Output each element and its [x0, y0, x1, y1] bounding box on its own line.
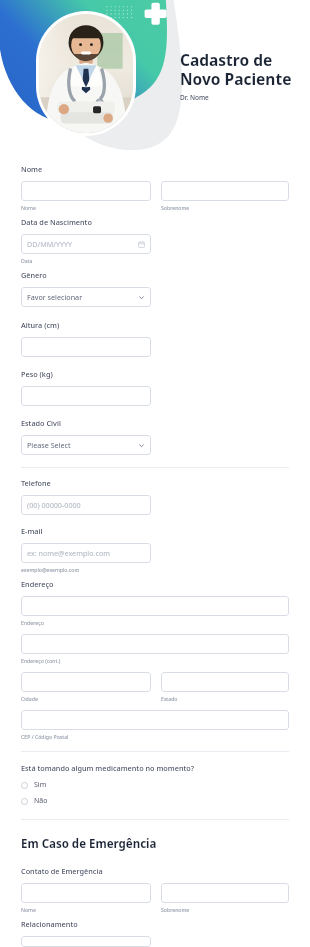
staticText: exemplo@exemplo.com [21, 566, 80, 573]
staticText: Não [34, 796, 48, 806]
staticText: Dr. Nome [180, 93, 209, 102]
button[interactable]: Não [21, 795, 289, 807]
button[interactable] [161, 883, 289, 903]
button[interactable] [161, 672, 289, 692]
button[interactable] [21, 634, 289, 654]
staticText: Endereço (cont.) [21, 657, 61, 664]
staticText: Endereço [21, 619, 44, 626]
button[interactable]: Please Select [21, 435, 151, 455]
staticText: Favor selecionar [27, 292, 83, 302]
staticText: Cadastro de Novo Paciente [180, 49, 302, 89]
button[interactable] [21, 710, 289, 730]
staticText: CEP / Código Postal [21, 733, 69, 740]
staticText: Sobrenome [161, 906, 190, 913]
staticText: Data de Nascimento [21, 217, 92, 227]
button[interactable]: (00) 00000-0000 [21, 495, 151, 515]
staticText: Cidade [21, 695, 38, 702]
other: Escolher data [138, 241, 145, 248]
button[interactable] [21, 596, 289, 616]
staticText: Relacionamento [21, 919, 78, 929]
staticText: Endereço [21, 579, 54, 589]
staticText: Contato de Emergência [21, 866, 103, 876]
staticText: Peso (kg) [21, 369, 53, 379]
staticText: Nome [21, 164, 43, 174]
button[interactable]: DD/MM/YYYY [21, 234, 151, 254]
staticText: Sobrenome [161, 204, 190, 211]
other: Abrir lista [138, 442, 145, 449]
staticText: DD/MM/YYYY [27, 239, 73, 249]
staticText: Telefone [21, 478, 51, 488]
other: Abrir lista [138, 294, 145, 301]
button[interactable]: Sim [21, 779, 289, 791]
button[interactable] [21, 883, 151, 903]
staticText: Estado [161, 695, 178, 702]
staticText: Em Caso de Emergência [21, 836, 157, 852]
button[interactable] [21, 181, 151, 201]
staticText: Nome [21, 204, 36, 211]
button[interactable] [21, 936, 151, 947]
button[interactable] [21, 337, 151, 357]
staticText: Please Select [27, 440, 71, 450]
staticText: ex: nome@exemplo.com [27, 548, 110, 558]
staticText: Altura (cm) [21, 320, 60, 330]
button[interactable] [21, 386, 151, 406]
button[interactable]: ex: nome@exemplo.com [21, 543, 151, 563]
button[interactable]: Favor selecionar [21, 287, 151, 307]
staticText: Nome [21, 906, 36, 913]
button[interactable] [161, 181, 289, 201]
button[interactable] [21, 672, 151, 692]
staticText: E-mail [21, 526, 43, 536]
staticText: Está tomando algum medicamento no moment… [21, 763, 194, 773]
staticText: (00) 00000-0000 [27, 500, 81, 510]
staticText: Sim [34, 780, 47, 790]
staticText: Gênero [21, 270, 47, 280]
staticText: Estado Civil [21, 418, 61, 428]
staticText: Data [21, 257, 33, 264]
